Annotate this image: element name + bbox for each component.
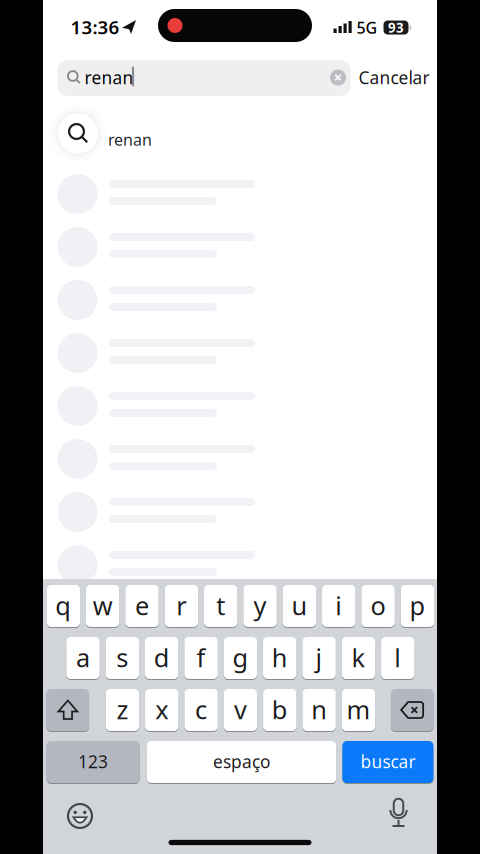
staticText: h <box>272 641 288 674</box>
staticText: f <box>197 641 206 674</box>
button[interactable]: Shift <box>47 688 89 731</box>
staticText: m <box>346 693 370 726</box>
staticText: z <box>116 693 128 726</box>
button[interactable]: o <box>361 584 395 627</box>
staticText: 123 <box>78 750 108 773</box>
staticText: p <box>409 589 425 622</box>
staticText: a <box>76 641 90 674</box>
button[interactable]: Screen recording <box>158 9 312 42</box>
staticText: buscar <box>360 750 415 773</box>
staticText: s <box>116 641 128 674</box>
button[interactable]: n <box>302 688 336 731</box>
button[interactable]: p <box>401 584 434 627</box>
button[interactable]: Delete <box>391 688 433 731</box>
button[interactable]: v <box>224 688 257 731</box>
staticText: o <box>371 589 386 622</box>
staticText: x <box>155 693 168 726</box>
button[interactable]: l <box>381 636 414 679</box>
staticText: k <box>351 641 365 674</box>
staticText: renan <box>84 66 133 89</box>
staticText: 93 <box>388 19 404 36</box>
button[interactable]: k <box>342 636 375 679</box>
staticText: e <box>135 589 149 622</box>
staticText: espaço <box>213 750 270 773</box>
button[interactable]: Emoji <box>65 801 95 831</box>
staticText: n <box>311 693 327 726</box>
staticText: 13:36 <box>70 15 119 39</box>
button[interactable]: h <box>263 636 296 679</box>
button[interactable]: Clear text <box>330 69 346 85</box>
button[interactable]: m <box>342 688 375 731</box>
button[interactable]: Numbers <box>47 740 140 783</box>
button[interactable]: b <box>263 688 296 731</box>
button[interactable]: Space <box>147 740 336 783</box>
staticText: b <box>272 693 288 726</box>
button[interactable]: renan <box>43 108 437 164</box>
staticText: d <box>154 641 170 674</box>
button[interactable]: i <box>322 584 355 627</box>
button[interactable]: e <box>125 584 159 627</box>
staticText: q <box>55 589 71 622</box>
button[interactable]: c <box>184 688 218 731</box>
staticText: u <box>291 589 307 622</box>
button[interactable]: q <box>47 584 80 627</box>
button[interactable]: Dictation <box>383 795 413 835</box>
button[interactable]: Search field <box>57 60 350 96</box>
button[interactable]: d <box>145 636 178 679</box>
staticText: t <box>216 589 225 622</box>
staticText: 5G <box>356 17 377 38</box>
button[interactable]: a <box>66 636 100 679</box>
staticText: r <box>176 589 186 622</box>
staticText: w <box>93 589 113 622</box>
button[interactable]: z <box>106 688 139 731</box>
button[interactable]: r <box>165 584 198 627</box>
button[interactable]: w <box>86 584 119 627</box>
button[interactable]: Search <box>342 740 433 783</box>
staticText: y <box>254 589 267 622</box>
button[interactable]: t <box>204 584 237 627</box>
staticText: i <box>335 589 342 622</box>
staticText: v <box>234 693 247 726</box>
staticText: j <box>316 641 323 674</box>
staticText: Cancelar <box>358 66 429 89</box>
button[interactable]: s <box>106 636 139 679</box>
button[interactable]: y <box>243 584 277 627</box>
button[interactable]: Cancelar <box>358 66 429 89</box>
staticText: l <box>394 641 401 674</box>
button[interactable]: g <box>224 636 257 679</box>
button[interactable]: f <box>184 636 218 679</box>
staticText: renan <box>108 129 152 150</box>
staticText: g <box>232 641 248 674</box>
button[interactable]: u <box>283 584 316 627</box>
staticText: c <box>195 693 207 726</box>
button[interactable]: j <box>302 636 336 679</box>
button[interactable]: x <box>145 688 178 731</box>
